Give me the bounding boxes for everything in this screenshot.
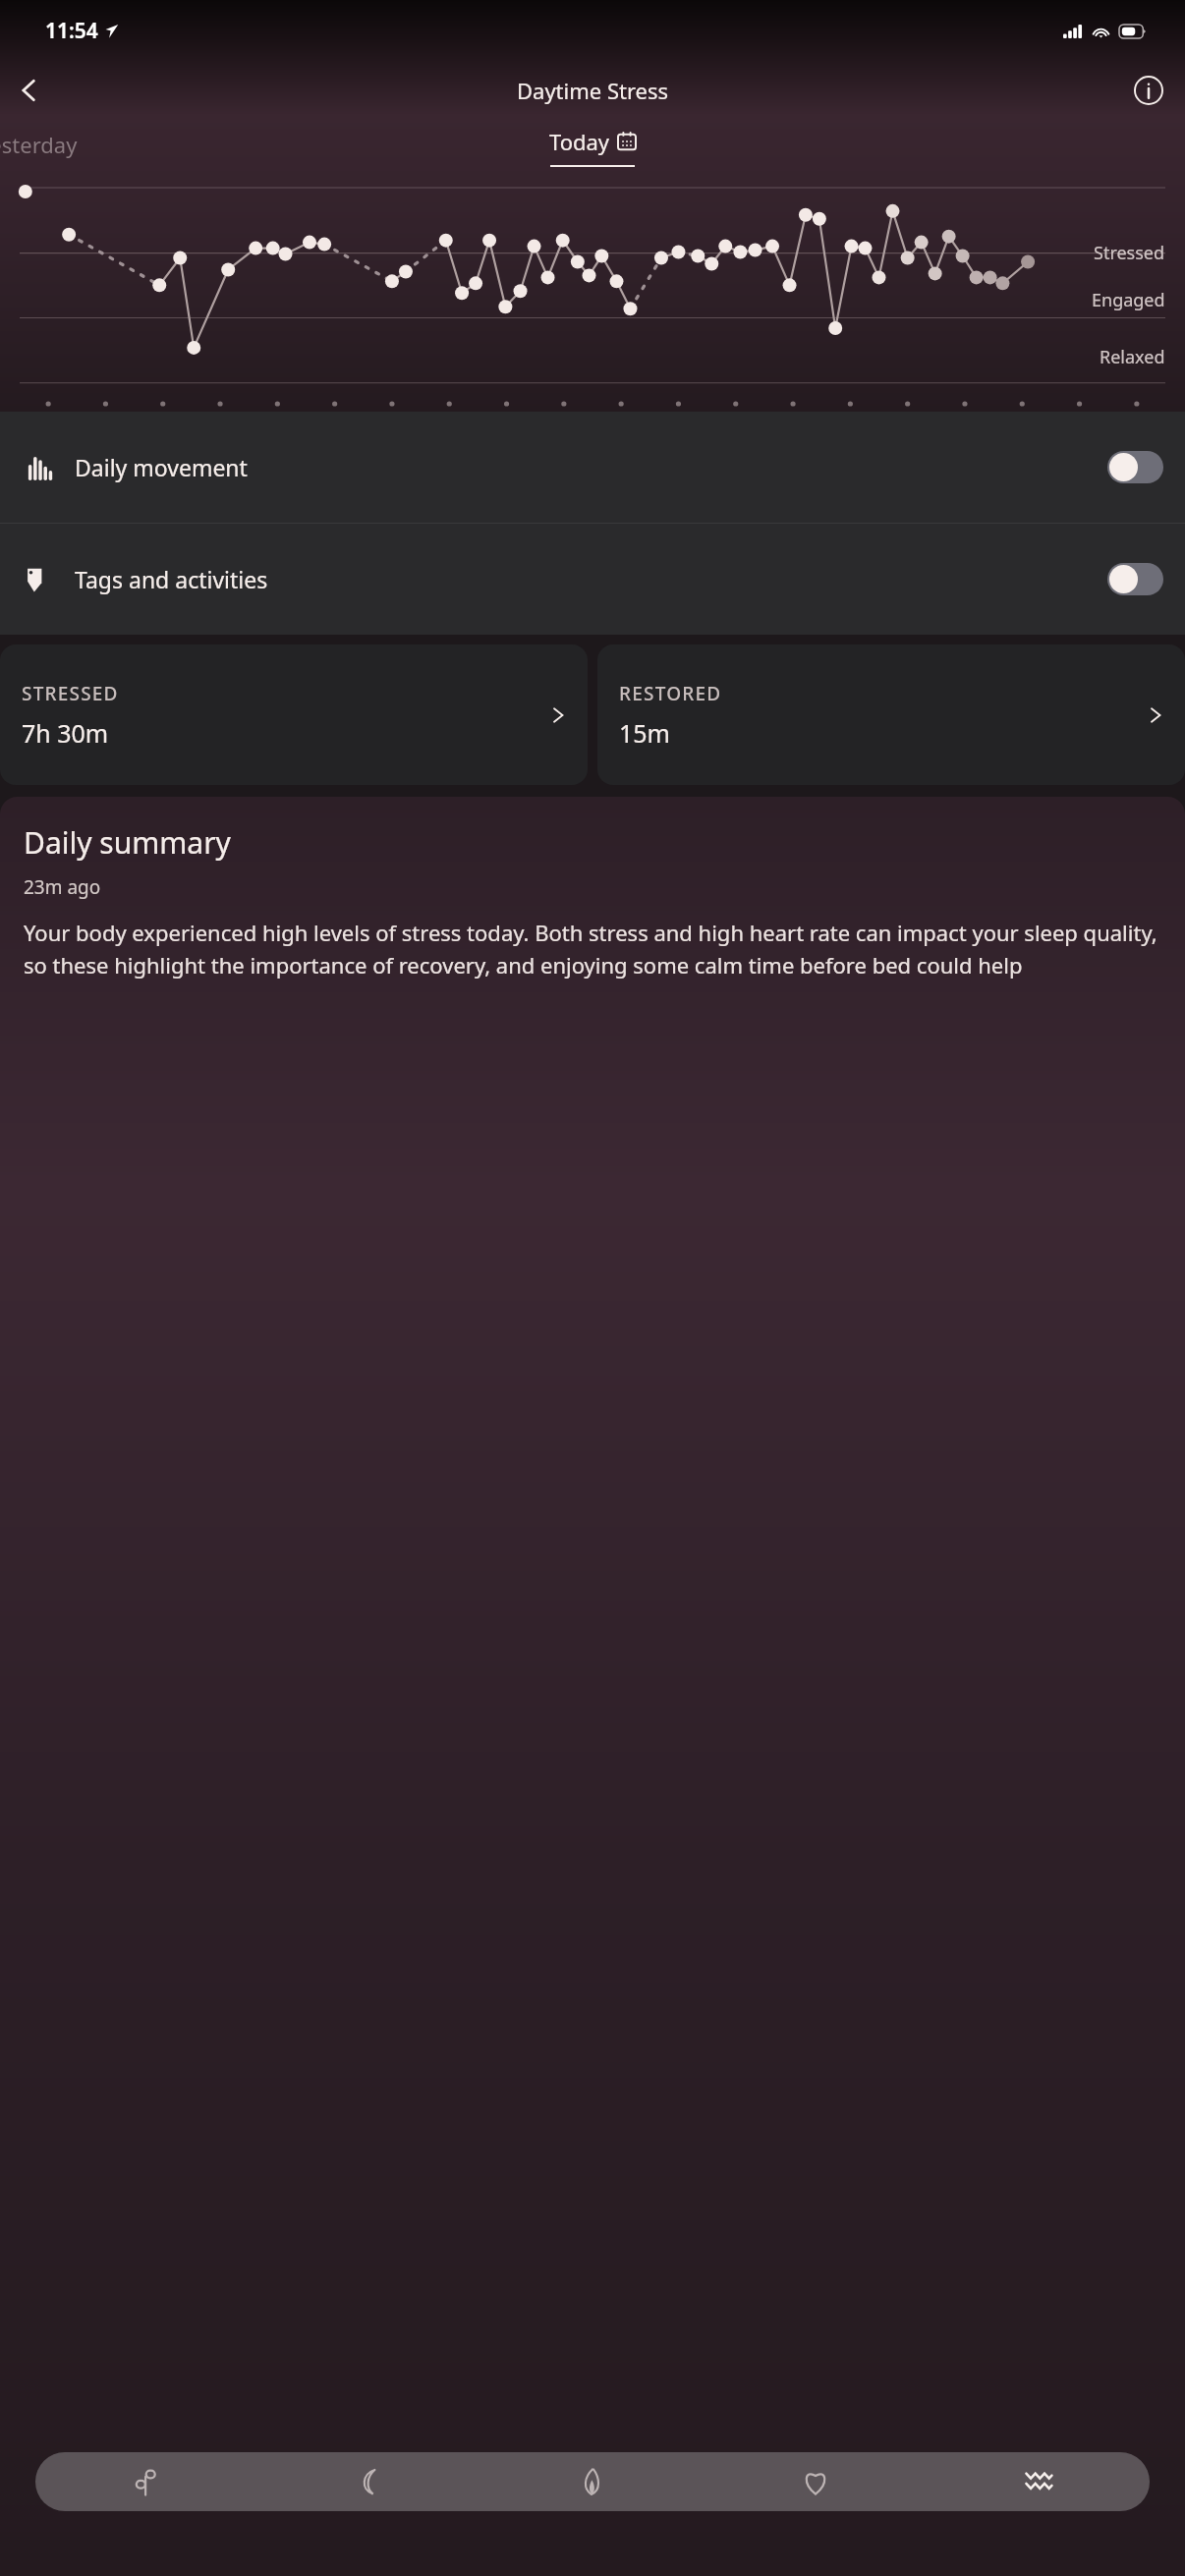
staticText: RESTORED xyxy=(619,681,722,706)
button[interactable]: RESTORED xyxy=(597,644,1185,785)
staticText: 15m xyxy=(619,716,670,750)
button[interactable]: Back xyxy=(4,65,55,116)
button[interactable]: Daily movement toggle xyxy=(1107,451,1163,483)
staticText: Today xyxy=(549,127,610,156)
staticText: Stressed xyxy=(1094,241,1165,265)
staticText: 23m ago xyxy=(24,874,101,900)
button[interactable]: Tags and activities toggle xyxy=(1107,563,1163,595)
button[interactable]: Sleep xyxy=(257,2452,480,2511)
button[interactable]: Sleep garden xyxy=(35,2452,257,2511)
staticText: Daily summary xyxy=(24,822,231,863)
staticText: Restored xyxy=(1091,407,1165,431)
staticText: Your body experienced high levels of str… xyxy=(24,918,1161,980)
button[interactable]: Energy xyxy=(480,2452,704,2511)
button[interactable]: Heart xyxy=(704,2452,927,2511)
staticText: 11:54 xyxy=(45,17,98,45)
button[interactable]: Today xyxy=(549,127,636,167)
staticText: Daily movement xyxy=(75,452,248,482)
staticText: Tags and activities xyxy=(75,564,268,594)
button[interactable]: Daily summary xyxy=(0,797,1185,2576)
staticText: 7h 30m xyxy=(22,716,109,750)
button[interactable]: Stress xyxy=(927,2452,1150,2511)
staticText: Daytime Stress xyxy=(517,76,669,105)
staticText: Engaged xyxy=(1092,288,1165,312)
button[interactable]: Daily movement xyxy=(0,412,1185,523)
button[interactable]: STRESSED xyxy=(0,644,588,785)
button[interactable]: Information xyxy=(1126,68,1171,113)
staticText: Yesterday xyxy=(0,130,78,159)
staticText: Relaxed xyxy=(1100,345,1165,369)
button[interactable]: Tags and activities xyxy=(0,524,1185,635)
staticText: STRESSED xyxy=(22,681,119,706)
